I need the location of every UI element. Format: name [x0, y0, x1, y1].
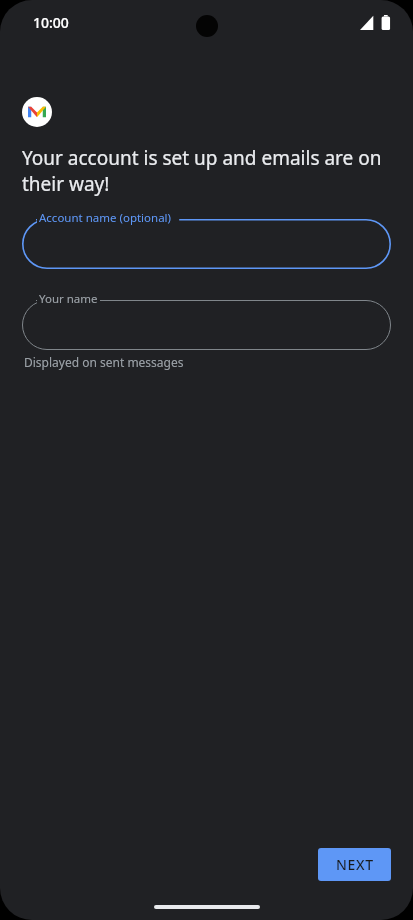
- staticText: 10:00: [33, 13, 69, 32]
- staticText: Displayed on sent messages: [24, 354, 184, 370]
- other: Gmail: [22, 97, 52, 127]
- staticText: Your account is set up and emails are on…: [22, 145, 391, 197]
- button[interactable]: Your name: [22, 291, 391, 350]
- button[interactable]: Account name (optional): [22, 210, 391, 269]
- staticText: Your name: [39, 291, 98, 307]
- staticText: Account name (optional): [39, 210, 172, 226]
- staticText: NEXT: [336, 855, 374, 874]
- button[interactable]: NEXT: [318, 848, 391, 881]
